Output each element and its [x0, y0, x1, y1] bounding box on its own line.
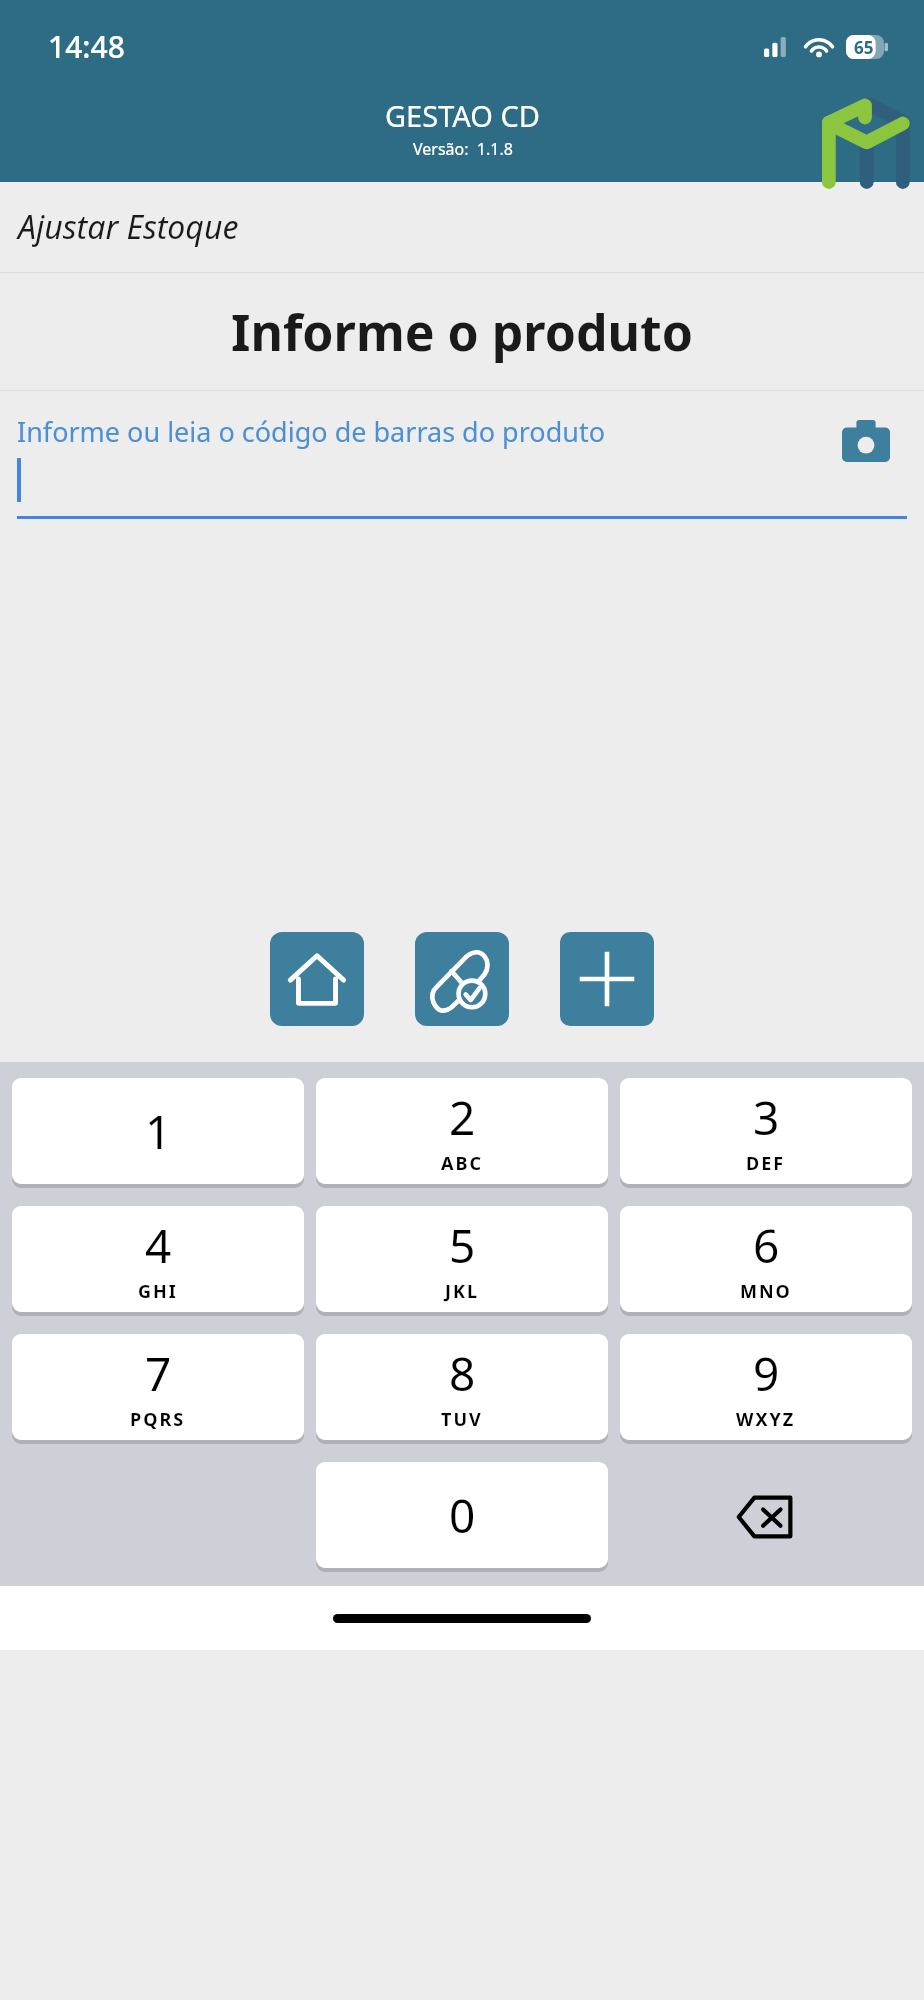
staticText: 6	[753, 1214, 780, 1277]
button[interactable]: 9	[620, 1334, 912, 1440]
button[interactable]: 5	[316, 1206, 608, 1312]
staticText: Versão: 1.1.8	[413, 138, 513, 160]
staticText: WXYZ	[736, 1407, 796, 1432]
staticText: 1	[145, 1100, 172, 1163]
staticText: 65	[854, 36, 874, 59]
button[interactable]: Início	[270, 932, 364, 1026]
staticText: 3	[753, 1086, 780, 1149]
staticText: Ajustar Estoque	[18, 205, 239, 249]
button[interactable]: 0	[316, 1462, 608, 1568]
staticText: 8	[449, 1342, 476, 1405]
button[interactable]: 7	[12, 1334, 304, 1440]
button[interactable]: Ler código de barras com a câmera	[838, 413, 894, 469]
button[interactable]: Produtos	[415, 932, 509, 1026]
staticText: DEF	[746, 1151, 786, 1176]
staticText: GESTAO CD	[385, 96, 540, 135]
staticText: TUV	[441, 1407, 483, 1432]
staticText: 5	[449, 1214, 476, 1277]
staticText: MNO	[740, 1279, 792, 1304]
button[interactable]: Apagar	[620, 1462, 912, 1572]
staticText: 2	[449, 1086, 476, 1149]
staticText: Informe ou leia o código de barras do pr…	[17, 413, 606, 450]
button[interactable]: 1	[12, 1078, 304, 1184]
staticText: PQRS	[130, 1407, 186, 1432]
button[interactable]: Adicionar	[560, 932, 654, 1026]
button[interactable]: 8	[316, 1334, 608, 1440]
staticText: 0	[449, 1484, 476, 1547]
staticText: JKL	[445, 1279, 479, 1304]
staticText: Informe o produto	[231, 298, 693, 366]
button[interactable]: 6	[620, 1206, 912, 1312]
button[interactable]: 3	[620, 1078, 912, 1184]
staticText: 14:48	[48, 26, 125, 67]
button[interactable]: 4	[12, 1206, 304, 1312]
button[interactable]: 2	[316, 1078, 608, 1184]
staticText: 4	[145, 1214, 172, 1277]
staticText: GHI	[138, 1279, 178, 1304]
staticText: 9	[753, 1342, 780, 1405]
staticText: ABC	[441, 1151, 483, 1176]
staticText: 7	[145, 1342, 172, 1405]
